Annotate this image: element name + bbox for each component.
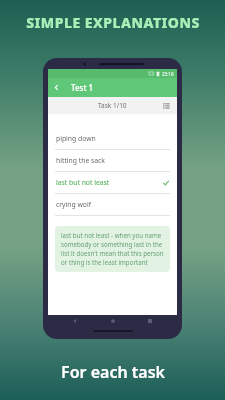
button[interactable]: Home — [107, 315, 119, 327]
staticText: last but not least - when you name someb… — [61, 231, 164, 267]
staticText: For each task — [61, 361, 165, 383]
staticText: SIMPLE EXPLANATIONS — [26, 13, 200, 32]
staticText: Task 1/10 — [98, 101, 127, 110]
staticText: hitting the sack — [56, 156, 105, 165]
button[interactable]: crying wolf — [48, 194, 177, 215]
staticText: 23:16 — [162, 71, 174, 77]
button[interactable]: hitting the sack — [48, 150, 177, 171]
button[interactable]: Back — [48, 79, 65, 96]
staticText: piping down — [56, 134, 96, 143]
staticText: Test 1 — [71, 82, 94, 93]
button[interactable]: Back — [69, 315, 81, 327]
button[interactable]: Recent apps — [144, 315, 156, 327]
staticText: crying wolf — [56, 200, 91, 209]
staticText: last but not least — [56, 178, 110, 187]
button[interactable]: Task list — [161, 100, 172, 111]
button[interactable]: piping down — [48, 128, 177, 149]
button[interactable]: last but not least — [48, 172, 177, 193]
